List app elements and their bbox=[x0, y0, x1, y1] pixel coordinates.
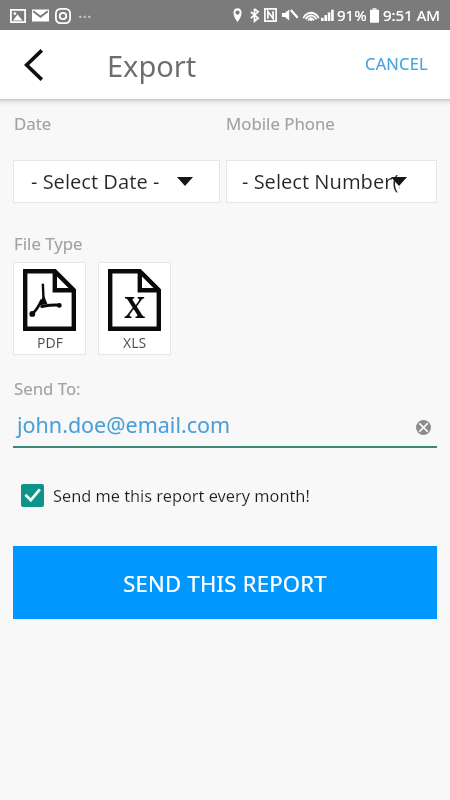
staticText: ... bbox=[78, 0, 92, 23]
staticText: PDF bbox=[37, 333, 63, 352]
staticText: - Select Date - bbox=[31, 168, 160, 195]
staticText: - Select Number(s) - bbox=[242, 168, 400, 195]
button[interactable]: CANCEL bbox=[349, 30, 450, 88]
staticText: Date bbox=[14, 112, 226, 135]
staticText: Send To: bbox=[14, 377, 81, 400]
staticText: File Type bbox=[14, 232, 83, 255]
staticText: X bbox=[124, 287, 146, 326]
staticText: XLS bbox=[123, 333, 147, 352]
staticText: SEND THIS REPORT bbox=[123, 568, 327, 598]
staticText: 91% bbox=[337, 5, 367, 25]
staticText: Send me this report every month! bbox=[53, 485, 310, 507]
button[interactable]: Clear text bbox=[411, 415, 435, 439]
button[interactable]: - Select Date - bbox=[13, 160, 220, 203]
staticText: 9:51 AM bbox=[383, 5, 440, 25]
staticText: CANCEL bbox=[365, 52, 428, 74]
button[interactable]: - Select Number(s) - bbox=[226, 160, 437, 203]
staticText: john.doe@email.com bbox=[17, 410, 231, 439]
button[interactable]: X bbox=[98, 262, 171, 355]
button[interactable]: PDF bbox=[13, 262, 86, 355]
staticText: Export bbox=[107, 46, 197, 85]
button[interactable]: Send me this report every month! bbox=[0, 484, 330, 507]
staticText: Mobile Phone bbox=[226, 112, 335, 135]
button[interactable]: SEND THIS REPORT bbox=[13, 546, 437, 619]
button[interactable]: Back bbox=[10, 42, 56, 88]
